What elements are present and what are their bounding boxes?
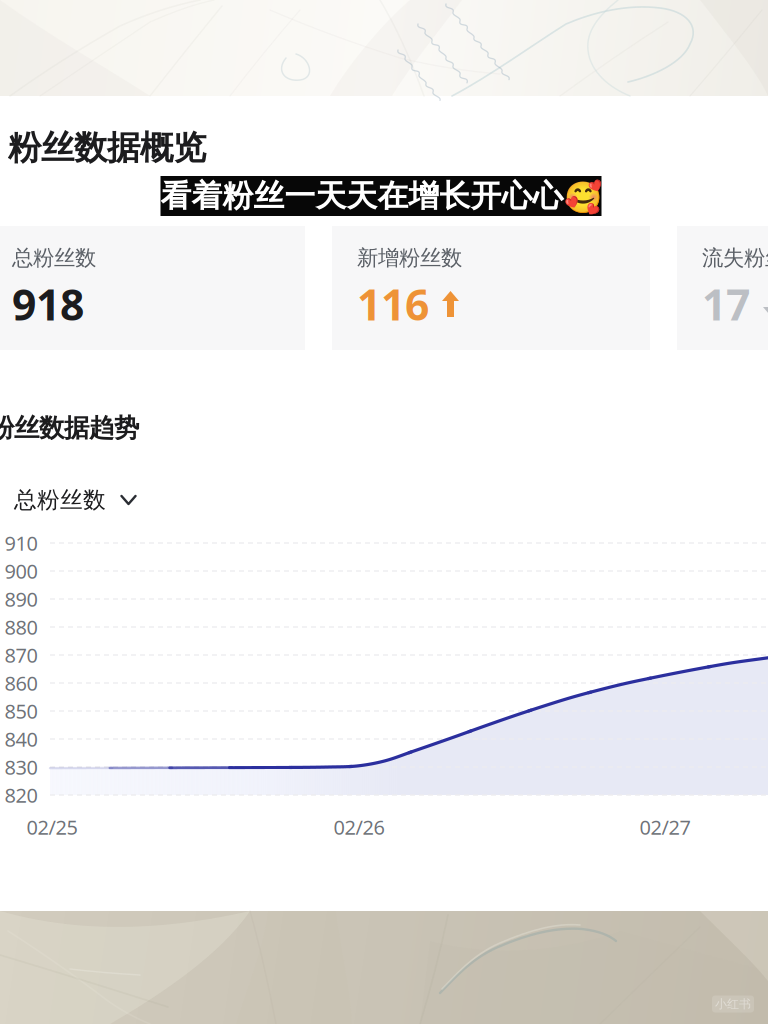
staticText: 820 bbox=[4, 782, 37, 808]
staticText: 860 bbox=[4, 670, 37, 696]
staticText: 总粉丝数 bbox=[14, 486, 106, 514]
staticText: 02/26 bbox=[333, 814, 384, 840]
staticText: 17 bbox=[702, 276, 750, 332]
staticText: 880 bbox=[4, 614, 37, 640]
staticText: 粉丝数据概览 bbox=[8, 127, 206, 168]
staticText: 流失粉丝数 bbox=[702, 245, 768, 271]
button[interactable]: 新增粉丝数 bbox=[332, 226, 650, 350]
staticText: 116 bbox=[357, 276, 429, 332]
staticText: 小红书 bbox=[715, 997, 751, 1011]
staticText: 910 bbox=[4, 530, 37, 556]
staticText: 02/25 bbox=[26, 814, 77, 840]
staticText: 粉丝数据趋势 bbox=[0, 412, 139, 443]
button[interactable]: 流失粉丝数 bbox=[677, 226, 768, 350]
staticText: 890 bbox=[4, 586, 37, 612]
button[interactable]: 总粉丝数 bbox=[14, 486, 137, 514]
staticText: 看着粉丝一天天在增长开心心🥰 bbox=[160, 177, 601, 215]
staticText: 918 bbox=[12, 276, 84, 332]
staticText: 840 bbox=[4, 726, 37, 752]
staticText: 870 bbox=[4, 642, 37, 668]
staticText: 830 bbox=[4, 754, 37, 780]
staticText: 02/27 bbox=[639, 814, 690, 840]
staticText: 新增粉丝数 bbox=[357, 245, 462, 271]
staticText: 850 bbox=[4, 698, 37, 724]
button[interactable]: 总粉丝数 bbox=[0, 226, 305, 350]
staticText: 900 bbox=[4, 558, 37, 584]
staticText: 总粉丝数 bbox=[12, 245, 96, 271]
